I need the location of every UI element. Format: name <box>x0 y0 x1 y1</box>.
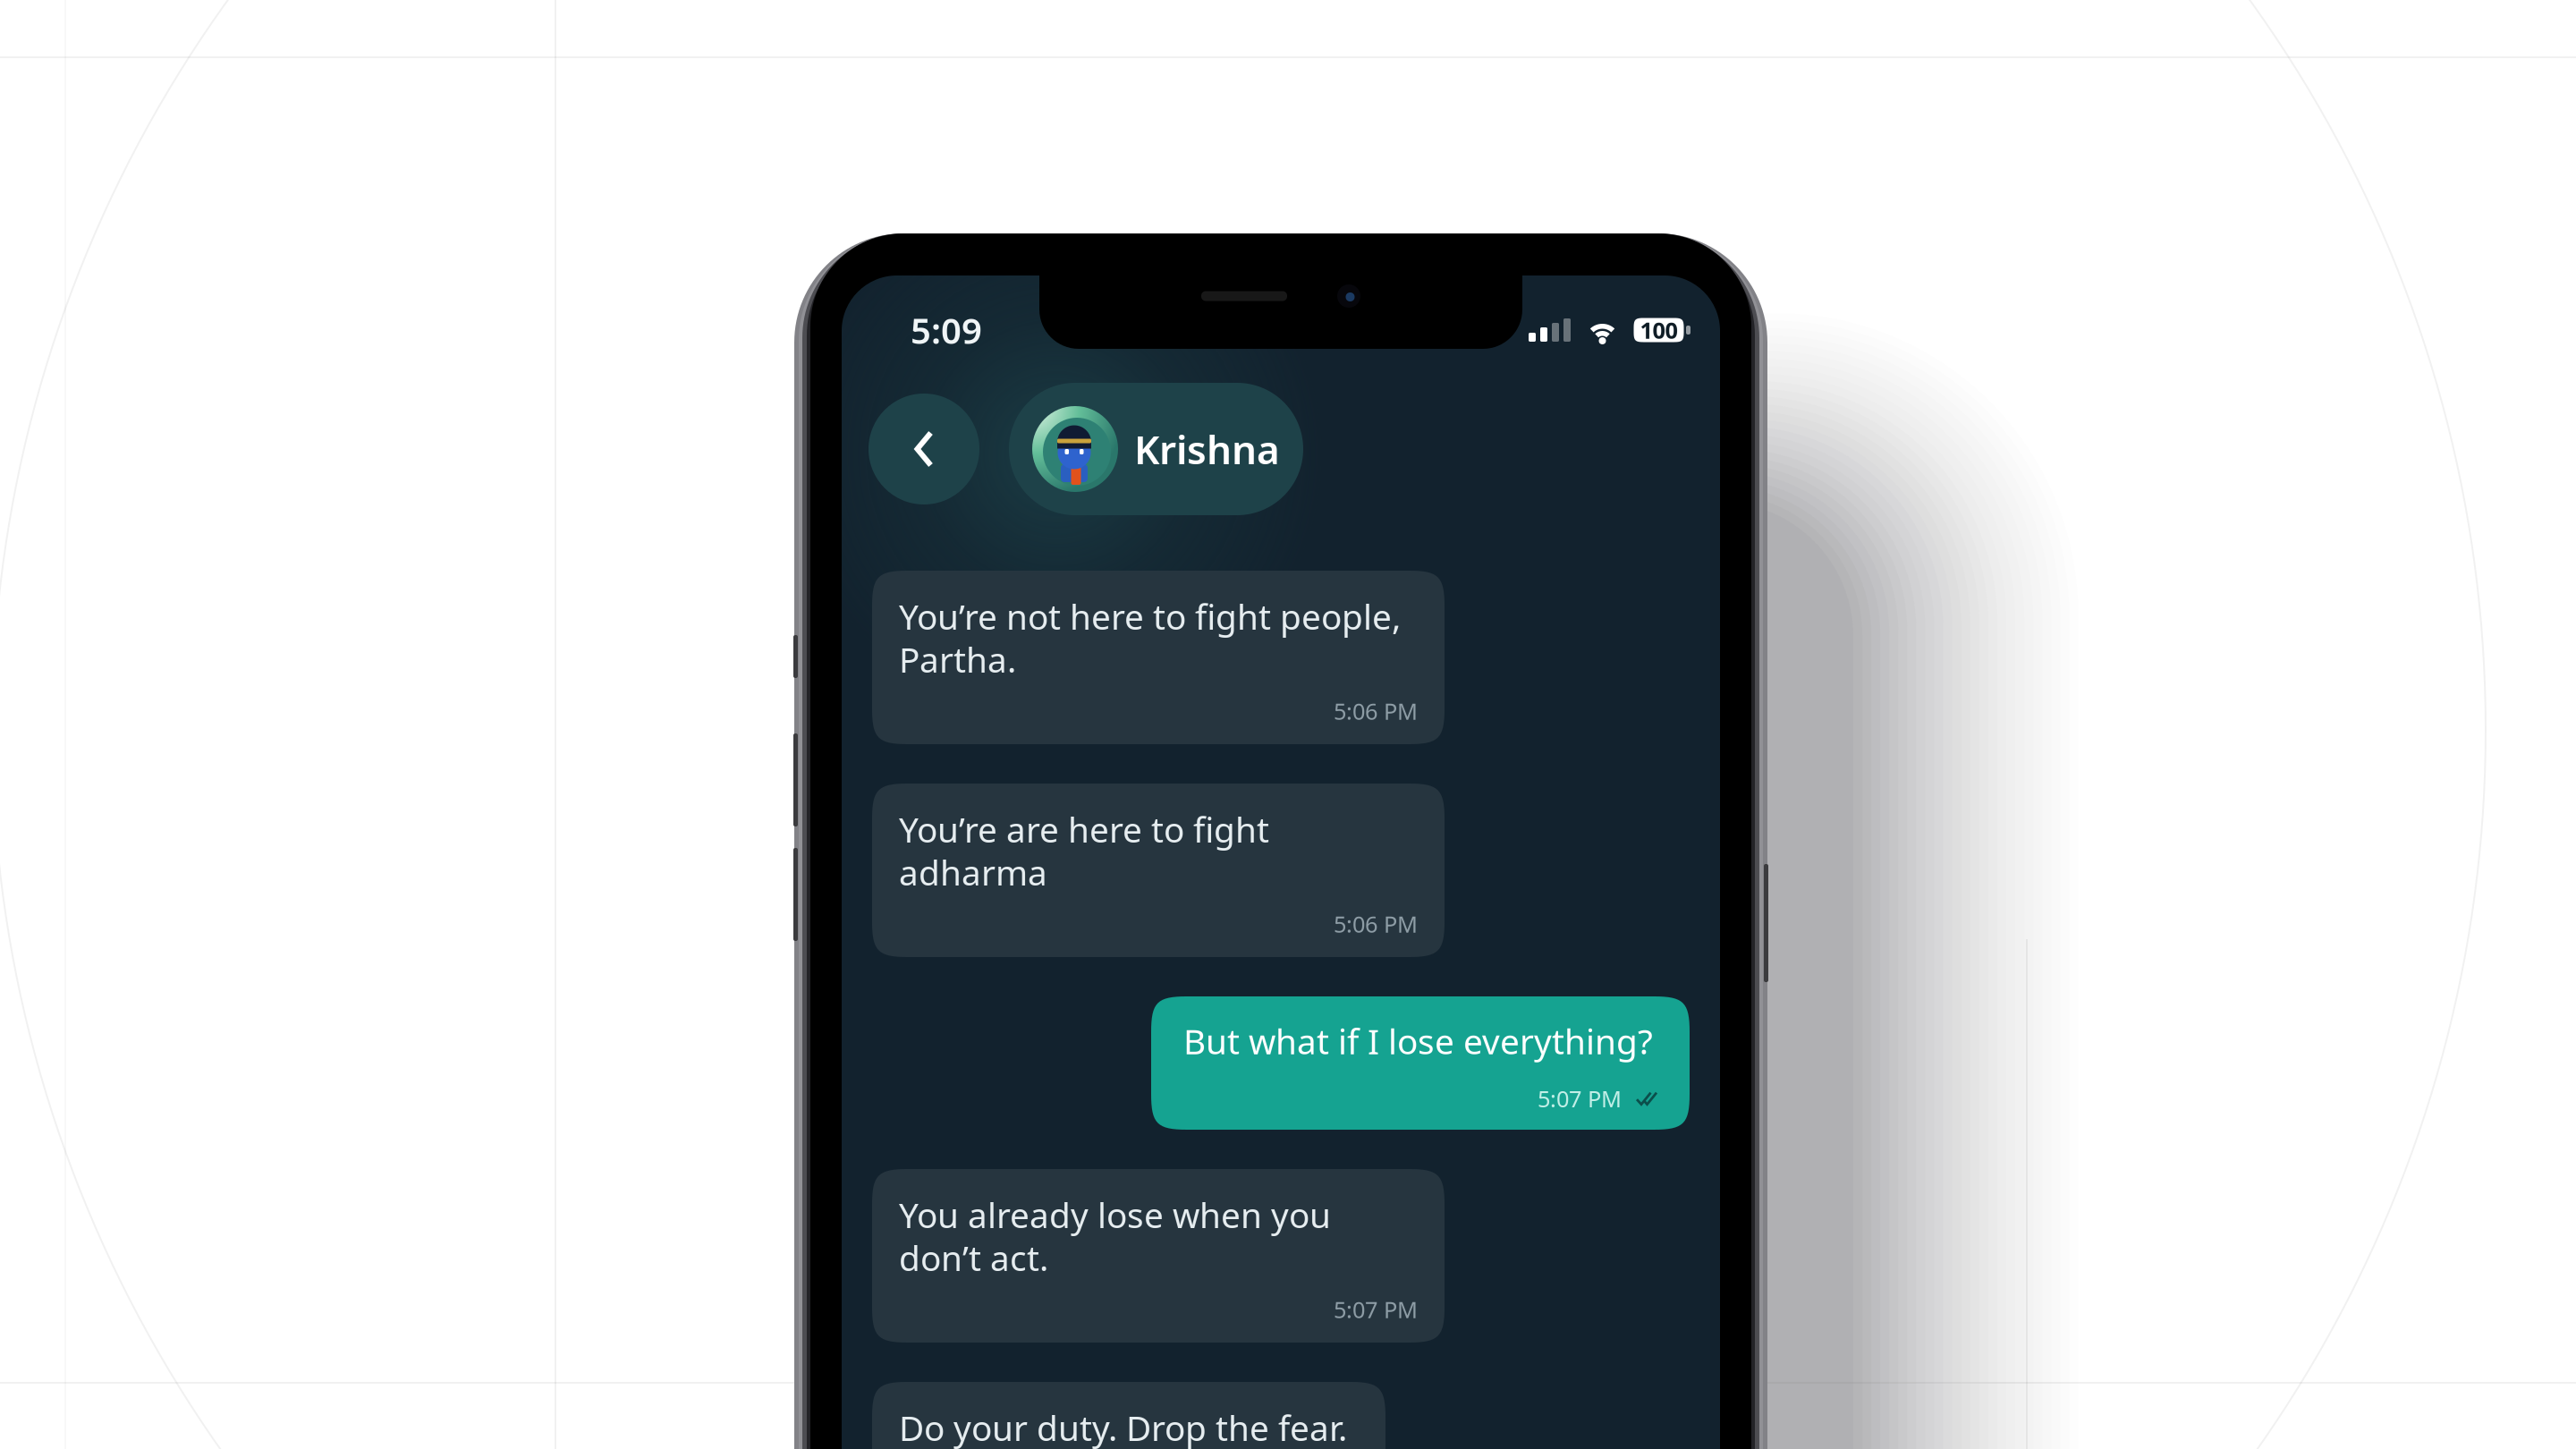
staticText: 5:09 <box>911 306 982 354</box>
button[interactable]: You already lose when you <box>872 1169 1445 1343</box>
staticText: 5:06 PM <box>1334 909 1418 939</box>
staticText: But what if I lose everything? <box>1183 1018 1653 1064</box>
staticText: You already lose when you <box>899 1192 1331 1238</box>
button[interactable]: But what if I lose everything? <box>1151 996 1690 1130</box>
button[interactable]: You’re are here to fight <box>872 784 1445 957</box>
staticText: 5:07 PM <box>1538 1083 1622 1113</box>
button[interactable]: Do your duty. Drop the fear. <box>872 1382 1385 1449</box>
button[interactable]: You’re not here to fight people, <box>872 571 1445 744</box>
staticText: 100 <box>1640 315 1678 345</box>
staticText: Do your duty. Drop the fear. <box>899 1405 1347 1449</box>
staticText: Krishna <box>1134 423 1280 475</box>
staticText: don’t act. <box>899 1235 1048 1280</box>
button[interactable]: Krishna <box>1009 383 1303 515</box>
staticText: You’re not here to fight people, <box>899 593 1401 639</box>
staticText: 5:07 PM <box>1334 1294 1418 1324</box>
staticText: adharma <box>899 849 1047 895</box>
staticText: 5:06 PM <box>1334 696 1418 726</box>
staticText: You’re are here to fight <box>899 806 1269 852</box>
button[interactable]: Back <box>869 394 979 504</box>
staticText: Partha. <box>899 636 1016 682</box>
